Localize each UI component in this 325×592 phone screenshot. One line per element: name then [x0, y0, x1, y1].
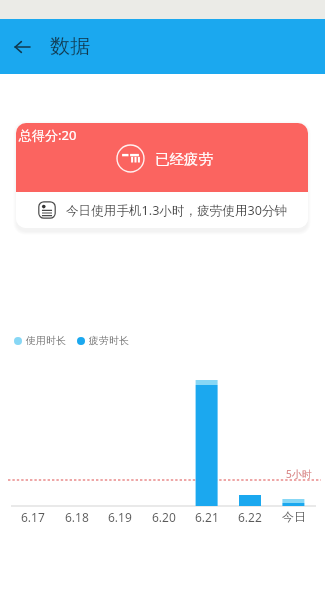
staticText: 疲劳时长	[89, 334, 129, 347]
staticText: 6.19	[108, 509, 132, 525]
staticText: 总得分:20	[19, 126, 77, 144]
staticText: 6.20	[152, 509, 176, 525]
staticText: 5小时	[286, 467, 312, 481]
staticText: 6.17	[21, 509, 45, 525]
staticText: 6.22	[238, 509, 262, 525]
staticText: 使用时长	[26, 334, 66, 347]
staticText: 已经疲劳	[155, 150, 213, 168]
button[interactable]: Back	[7, 32, 37, 62]
staticText: 6.21	[195, 509, 219, 525]
staticText: 6.18	[65, 509, 89, 525]
button[interactable]: 总得分:20	[16, 123, 308, 228]
staticText: 今日	[282, 509, 306, 524]
staticText: 今日使用手机1.3小时，疲劳使用30分钟	[66, 202, 288, 219]
staticText: 数据	[50, 34, 90, 59]
